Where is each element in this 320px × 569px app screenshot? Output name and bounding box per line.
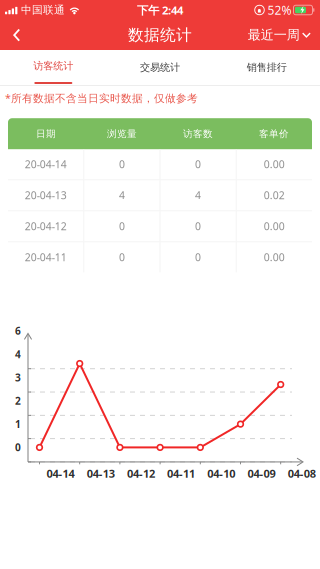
staticText: 4	[119, 188, 125, 202]
staticText: 4	[195, 188, 201, 202]
staticText: 0.00	[264, 250, 285, 264]
staticText: *所有数据不含当日实时数据，仅做参考	[5, 91, 198, 105]
button[interactable]: 最近一周	[240, 20, 320, 50]
button[interactable]: 销售排行	[213, 51, 320, 84]
staticText: 浏览量	[107, 128, 137, 140]
staticText: 1	[15, 417, 21, 431]
staticText: 04-09	[247, 466, 275, 481]
staticText: 20-04-13	[25, 188, 67, 202]
staticText: 访客数	[183, 128, 213, 140]
staticText: 0	[119, 250, 125, 264]
button[interactable]: 访客统计	[0, 50, 107, 85]
staticText: 0.00	[264, 157, 285, 171]
staticText: 20-04-11	[25, 250, 67, 264]
button[interactable]: Back	[0, 20, 34, 50]
staticText: 0	[195, 219, 201, 233]
staticText: 0.00	[264, 219, 285, 233]
staticText: 6	[15, 324, 21, 338]
staticText: 销售排行	[247, 61, 287, 74]
staticText: 04-13	[87, 466, 115, 481]
staticText: 下午 2:44	[137, 2, 183, 18]
staticText: 0	[119, 219, 125, 233]
staticText: 52%	[267, 2, 291, 18]
staticText: 20-04-12	[25, 219, 67, 233]
staticText: 04-14	[46, 466, 74, 481]
staticText: 0	[195, 250, 201, 264]
staticText: 0.02	[264, 188, 285, 202]
staticText: 中国联通	[21, 3, 65, 17]
staticText: 0	[195, 157, 201, 171]
staticText: 客单价	[259, 128, 289, 140]
staticText: 4	[15, 347, 21, 361]
staticText: 3	[15, 371, 21, 384]
staticText: 日期	[36, 128, 56, 140]
button[interactable]: 交易统计	[107, 51, 213, 84]
staticText: 最近一周	[248, 27, 300, 43]
staticText: 0	[119, 157, 125, 171]
staticText: 数据统计	[128, 25, 192, 45]
staticText: 20-04-14	[25, 157, 67, 171]
staticText: 04-11	[167, 466, 195, 481]
staticText: 04-12	[127, 466, 155, 481]
staticText: 交易统计	[140, 61, 180, 74]
staticText: 04-08	[288, 466, 316, 481]
staticText: 0	[15, 440, 21, 454]
staticText: 04-10	[207, 466, 235, 481]
staticText: 访客统计	[33, 60, 73, 72]
staticText: 2	[15, 394, 21, 408]
